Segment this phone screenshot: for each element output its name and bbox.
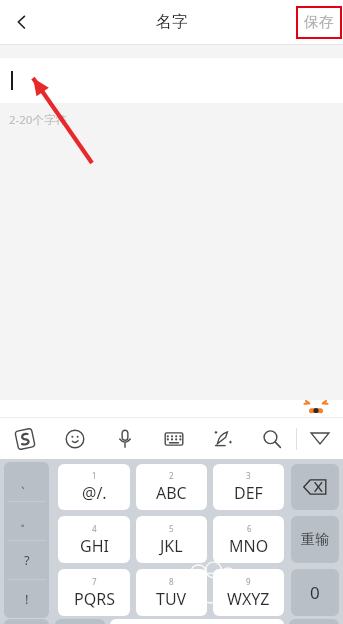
button[interactable]: 4	[58, 516, 130, 563]
button[interactable]: Backspace	[291, 464, 339, 510]
staticText: !	[25, 590, 29, 608]
staticText: 9	[246, 576, 251, 587]
staticText: 3	[246, 470, 251, 481]
button[interactable]: Emoji	[50, 418, 100, 459]
button[interactable]: Handwriting	[198, 418, 247, 459]
staticText: 2	[169, 470, 174, 481]
button[interactable]: 。	[4, 502, 49, 540]
button[interactable]: 0	[291, 569, 339, 616]
staticText: JKL	[160, 535, 183, 557]
staticText: 、	[20, 474, 33, 490]
button[interactable]: Voice input	[100, 418, 149, 459]
staticText: 1	[92, 470, 97, 481]
button[interactable]: Search	[247, 418, 296, 459]
button[interactable]: Hide keyboard	[296, 418, 343, 459]
staticText: DEF	[234, 482, 263, 504]
button[interactable]: !	[4, 580, 49, 618]
button[interactable]: Sogou	[0, 418, 50, 459]
staticText: TUV	[156, 588, 187, 610]
staticText: WXYZ	[227, 588, 270, 610]
staticText: 保存	[304, 13, 334, 32]
button[interactable]: 9	[213, 569, 284, 616]
button[interactable]: 3	[213, 464, 284, 510]
staticText: 6	[247, 523, 252, 534]
staticText: 4	[92, 523, 97, 534]
button[interactable]: ?	[4, 541, 49, 579]
staticText: GHI	[80, 535, 109, 557]
button[interactable]: Back	[0, 0, 44, 44]
staticText: 。	[20, 513, 33, 529]
staticText: 5	[169, 523, 174, 534]
button[interactable]: 重输	[291, 516, 339, 563]
staticText: ABC	[156, 482, 187, 504]
button[interactable]	[0, 58, 343, 103]
staticText: @/.	[82, 482, 107, 504]
staticText: PQRS	[74, 588, 115, 610]
button[interactable]: 2	[136, 464, 207, 510]
button[interactable]: 、	[4, 462, 49, 501]
staticText: 名字	[156, 12, 188, 32]
button[interactable]: 7	[58, 569, 130, 616]
staticText: MNO	[229, 535, 269, 557]
staticText: ?	[24, 551, 30, 569]
button[interactable]: 8	[136, 569, 207, 616]
button[interactable]: 保存	[297, 7, 341, 37]
staticText: 重输	[301, 531, 329, 549]
staticText: 0	[310, 581, 320, 604]
staticText: 2-20个字符	[9, 112, 67, 128]
staticText: 7	[92, 576, 97, 587]
button[interactable]: 1	[58, 464, 130, 510]
staticText: 8	[169, 576, 174, 587]
button[interactable]: Keyboard	[149, 418, 198, 459]
button[interactable]: 5	[136, 516, 207, 563]
button[interactable]: 6	[213, 516, 284, 563]
